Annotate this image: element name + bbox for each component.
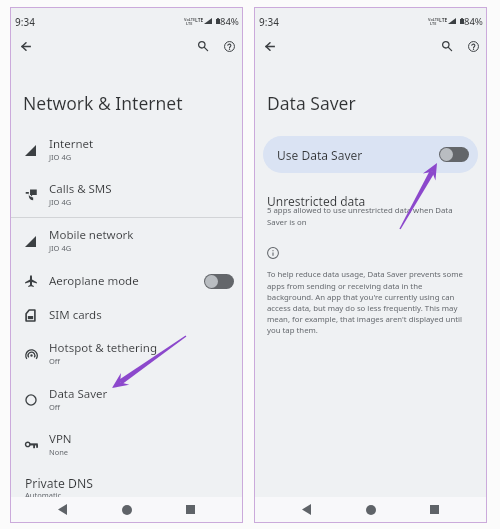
button[interactable]: Toggle (204, 274, 234, 289)
staticText: 84% (464, 15, 483, 28)
staticText: VPN (49, 431, 72, 447)
button[interactable]: Use Data Saver (263, 136, 478, 173)
staticText: LTE (195, 17, 204, 24)
staticText: SIM cards (49, 307, 102, 323)
button[interactable]: Aeroplane mode (11, 264, 242, 298)
button[interactable]: Help (461, 34, 485, 58)
staticText: LTE (430, 21, 437, 26)
staticText: Calls & SMS (49, 181, 112, 197)
staticText: JIO 4G (49, 243, 72, 253)
button[interactable]: Search (435, 34, 459, 58)
staticText: To help reduce data usage, Data Saver pr… (267, 269, 469, 335)
button[interactable]: SIM cards (11, 298, 242, 332)
staticText: 9:34 (259, 15, 279, 29)
staticText: Aeroplane mode (49, 273, 139, 289)
staticText: Unrestricted data (267, 193, 366, 209)
staticText: Off (49, 356, 61, 366)
button[interactable]: Back (50, 497, 75, 522)
staticText: JIO 4G (49, 152, 72, 162)
staticText: JIO 4G (49, 197, 72, 207)
button[interactable]: Hotspot & tethering (11, 331, 242, 376)
button[interactable]: Information (267, 247, 279, 259)
staticText: 5 apps allowed to use unrestricted data … (267, 205, 463, 227)
button[interactable]: Recent apps (422, 497, 447, 522)
staticText: LTE (186, 21, 193, 26)
staticText: 9:34 (15, 15, 35, 29)
button[interactable]: Help (217, 34, 241, 58)
staticText: Data Saver (267, 91, 356, 115)
staticText: Hotspot & tethering (49, 340, 157, 356)
button[interactable]: Mobile network (11, 218, 242, 263)
button[interactable]: Back (258, 34, 282, 58)
button[interactable]: Home (358, 497, 383, 522)
button[interactable]: Data Saver (11, 377, 242, 422)
button[interactable]: Internet (11, 127, 242, 172)
staticText: None (49, 447, 69, 457)
button[interactable]: Calls & SMS (11, 172, 242, 217)
button[interactable]: Private DNS (11, 467, 242, 497)
staticText: 84% (220, 15, 239, 28)
button[interactable]: Back (14, 34, 38, 58)
button[interactable]: Home (114, 497, 139, 522)
staticText: Private DNS (25, 475, 93, 492)
button[interactable]: Search (191, 34, 215, 58)
staticText: Internet (49, 136, 94, 152)
staticText: Network & Internet (23, 91, 183, 115)
staticText: LTE (439, 17, 448, 24)
staticText: Mobile network (49, 227, 134, 243)
button[interactable]: Back (294, 497, 319, 522)
button[interactable]: VPN (11, 422, 242, 467)
button[interactable]: Toggle (439, 147, 469, 162)
staticText: Data Saver (49, 386, 108, 402)
button[interactable]: Recent apps (178, 497, 203, 522)
staticText: Off (49, 402, 61, 412)
staticText: VoLTE (428, 17, 440, 22)
staticText: Automatic (25, 490, 62, 500)
staticText: Use Data Saver (277, 147, 363, 163)
staticText: VoLTE (184, 17, 196, 22)
